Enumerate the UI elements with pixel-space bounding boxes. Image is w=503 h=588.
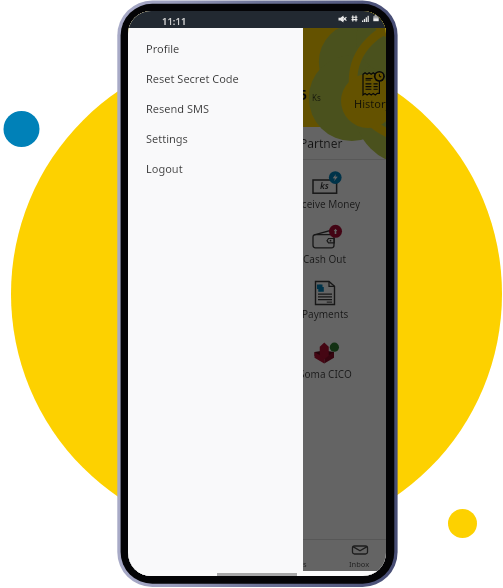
button[interactable]: Soma CICO (283, 341, 367, 389)
button[interactable]: Soma (193, 540, 259, 574)
button[interactable]: Profile (128, 33, 303, 63)
staticText: ks (320, 180, 329, 192)
button[interactable]: Cash Out (283, 226, 367, 274)
button[interactable]: ks (283, 171, 367, 219)
staticText: Receive Money (290, 197, 361, 211)
staticText: Soma CICO (299, 367, 352, 381)
button[interactable]: Resend SMS (128, 93, 303, 123)
staticText: Services (278, 559, 307, 569)
staticText: Logout (146, 161, 183, 176)
button[interactable]: Inbox (326, 540, 386, 574)
button[interactable]: ks (154, 171, 238, 219)
staticText: Reset Secret Code (146, 71, 239, 86)
staticText: Payments (302, 307, 349, 321)
staticText: History (354, 96, 386, 111)
staticText: Partner (300, 135, 343, 151)
staticText: 5 (299, 85, 308, 104)
button[interactable]: Payments (283, 281, 367, 329)
staticText: Ks (312, 92, 321, 103)
button[interactable]: Reset Secret Code (128, 63, 303, 93)
button[interactable]: History (352, 71, 386, 112)
button[interactable]: Soma (128, 127, 257, 159)
staticText: Inbox (349, 559, 370, 569)
staticText: Cash Out (303, 252, 347, 266)
staticText: Soma (177, 135, 209, 151)
staticText: Profile (146, 41, 180, 56)
staticText: Resend SMS (146, 101, 209, 116)
button[interactable]: Settings (128, 123, 303, 153)
staticText: 11:11 (162, 15, 187, 28)
button[interactable]: Partner (257, 127, 386, 159)
button[interactable]: Logout (128, 153, 303, 183)
staticText: Settings (146, 131, 188, 146)
button[interactable]: Home (128, 540, 192, 574)
button[interactable]: Services (259, 540, 325, 574)
